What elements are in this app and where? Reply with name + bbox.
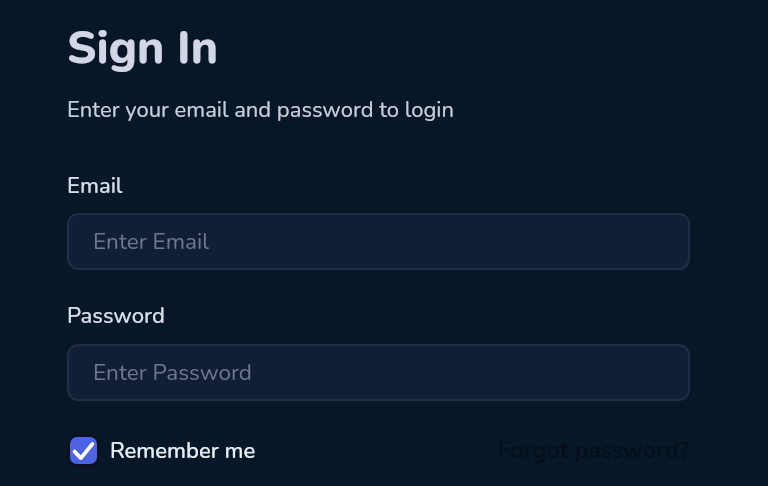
- staticText: Enter Password: [93, 357, 253, 388]
- staticText: Password: [67, 301, 165, 331]
- button[interactable]: Forgot password?: [498, 435, 690, 466]
- staticText: Remember me: [110, 436, 256, 466]
- button[interactable]: Enter Email: [67, 213, 690, 270]
- staticText: Email: [67, 171, 123, 201]
- staticText: Enter your email and password to login: [67, 95, 454, 125]
- staticText: Sign In: [67, 16, 218, 79]
- button[interactable]: Remember me: [67, 434, 256, 467]
- staticText: Enter Email: [93, 226, 209, 257]
- button[interactable]: Enter Password: [67, 344, 690, 401]
